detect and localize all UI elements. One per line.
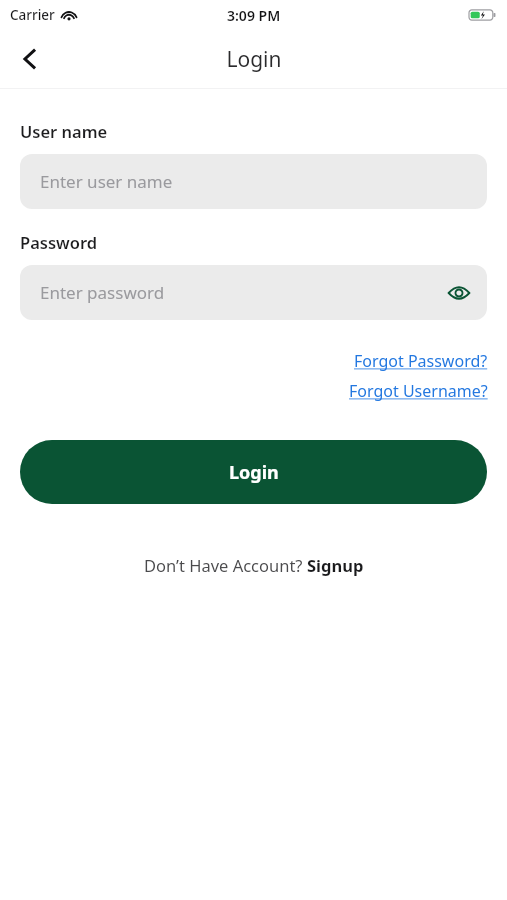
button[interactable]: Enter password [20, 265, 487, 320]
button[interactable]: Enter user name [20, 154, 487, 209]
button[interactable]: Show password [443, 277, 475, 309]
staticText: Forgot Username? [349, 380, 488, 402]
staticText: Login [229, 460, 279, 485]
button[interactable]: Signup [307, 554, 364, 576]
staticText: Carrier [10, 6, 55, 24]
staticText: Forgot Password? [354, 350, 488, 372]
button[interactable]: Forgot Password? [354, 350, 488, 372]
staticText: Login [226, 45, 282, 74]
staticText: Enter password [40, 281, 165, 304]
button[interactable]: Login [20, 440, 487, 504]
staticText: Signup [307, 554, 364, 576]
staticText: Enter user name [40, 170, 173, 193]
staticText: 3:09 PM [227, 6, 281, 25]
button[interactable]: Back [8, 37, 52, 81]
staticText: Password [20, 231, 98, 253]
button[interactable]: Forgot Username? [349, 380, 488, 402]
staticText: User name [20, 120, 108, 142]
staticText: Don’t Have Account? [144, 554, 307, 576]
